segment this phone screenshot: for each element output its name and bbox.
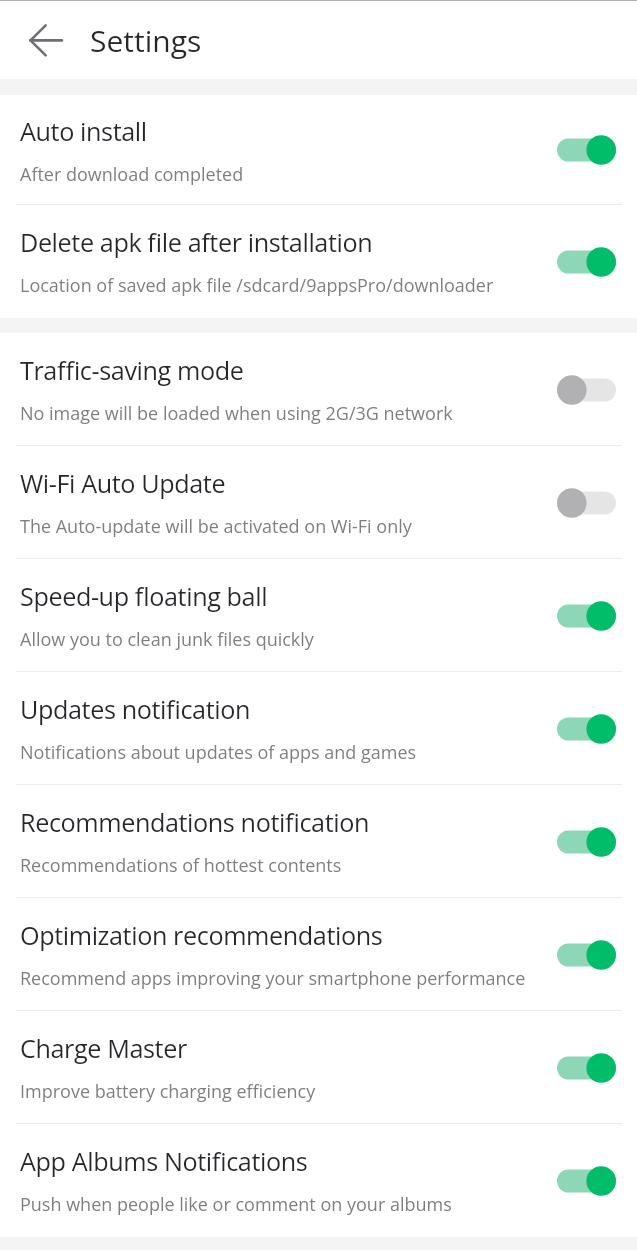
button[interactable]: Back [8, 2, 84, 78]
button[interactable]: Toggle on [557, 135, 616, 165]
staticText: Updates notification [20, 692, 251, 726]
button[interactable]: Toggle on [557, 601, 616, 631]
staticText: Speed-up floating ball [20, 579, 268, 613]
staticText: Recommendations of hottest contents [20, 853, 342, 878]
staticText: Allow you to clean junk files quickly [20, 627, 314, 652]
staticText: The Auto-update will be activated on Wi-… [20, 514, 412, 539]
button[interactable]: Toggle on [557, 940, 616, 970]
staticText: Settings [90, 20, 202, 61]
staticText: Charge Master [20, 1031, 187, 1065]
staticText: Recommend apps improving your smartphone… [20, 966, 526, 991]
staticText: Location of saved apk file /sdcard/9apps… [20, 273, 494, 298]
button[interactable]: Toggle on [557, 714, 616, 744]
button[interactable]: Auto install [0, 95, 637, 205]
button[interactable]: Updates notification [0, 672, 637, 785]
button[interactable]: Toggle on [557, 247, 616, 277]
button[interactable]: Traffic-saving mode [0, 333, 637, 446]
button[interactable]: Toggle off [557, 375, 616, 405]
button[interactable]: Toggle off [557, 488, 616, 518]
button[interactable]: Toggle on [557, 1166, 616, 1196]
staticText: After download completed [20, 162, 244, 187]
button[interactable]: Optimization recommendations [0, 898, 637, 1011]
staticText: Delete apk file after installation [20, 225, 373, 259]
staticText: Improve battery charging efficiency [20, 1079, 316, 1104]
staticText: Traffic-saving mode [20, 353, 244, 387]
button[interactable]: Wi-Fi Auto Update [0, 446, 637, 559]
staticText: Recommendations notification [20, 805, 369, 839]
button[interactable]: Toggle on [557, 827, 616, 857]
staticText: App Albums Notifications [20, 1144, 308, 1178]
button[interactable]: Recommendations notification [0, 785, 637, 898]
staticText: No image will be loaded when using 2G/3G… [20, 401, 453, 426]
button[interactable]: Charge Master [0, 1011, 637, 1124]
staticText: Notifications about updates of apps and … [20, 740, 417, 765]
button[interactable]: Toggle on [557, 1053, 616, 1083]
staticText: Auto install [20, 114, 147, 148]
button[interactable]: Speed-up floating ball [0, 559, 637, 672]
button[interactable]: Delete apk file after installation [0, 205, 637, 318]
staticText: Optimization recommendations [20, 918, 383, 952]
button[interactable]: App Albums Notifications [0, 1124, 637, 1237]
staticText: Push when people like or comment on your… [20, 1192, 452, 1217]
staticText: Wi-Fi Auto Update [20, 466, 226, 500]
